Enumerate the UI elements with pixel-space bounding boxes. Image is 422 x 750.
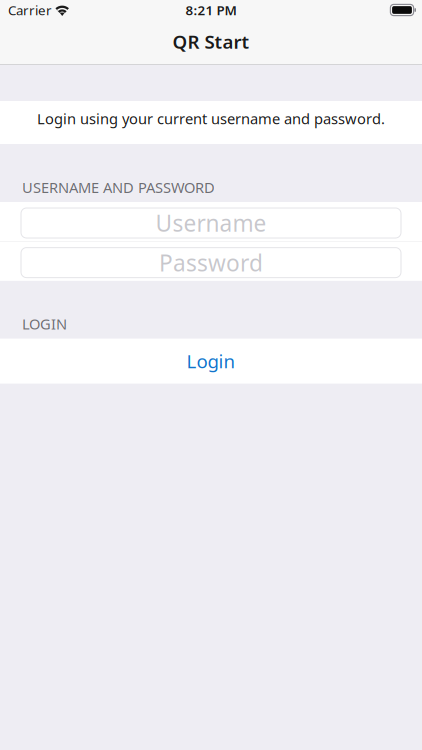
staticText: Username (155, 208, 266, 238)
staticText: Password (159, 247, 263, 278)
staticText: 8:21 PM (185, 1, 236, 19)
button[interactable]: Login (0, 339, 422, 384)
staticText: Login using your current username and pa… (37, 109, 385, 128)
staticText: LOGIN (22, 314, 67, 334)
staticText: USERNAME AND PASSWORD (22, 177, 215, 197)
staticText: QR Start (172, 29, 249, 54)
button[interactable]: Password (0, 242, 422, 281)
button[interactable]: Username (0, 202, 422, 241)
staticText: Login (186, 349, 235, 373)
staticText: Carrier (8, 1, 52, 19)
